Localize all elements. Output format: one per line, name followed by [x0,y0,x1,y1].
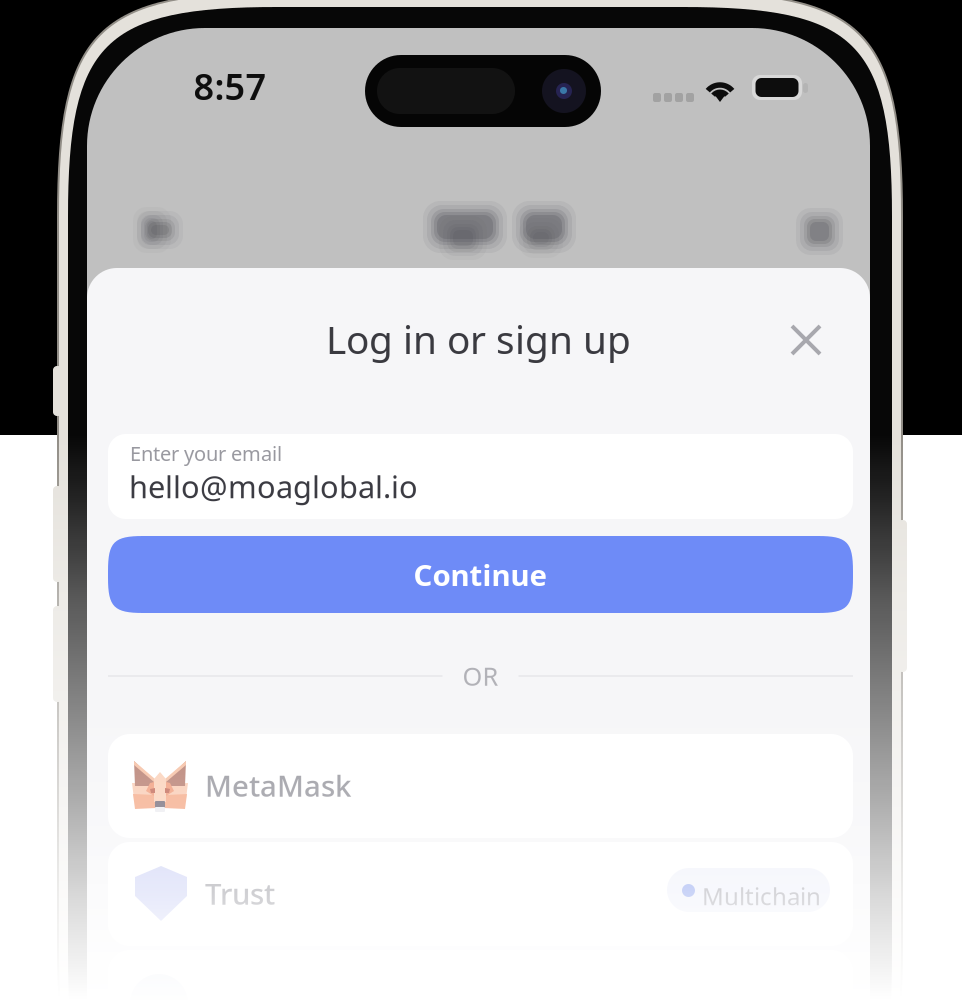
staticText: Trust [205,874,275,913]
staticText: Continue [413,555,547,594]
staticText: Enter your email [130,440,282,467]
staticText: hello@moaglobal.io [129,466,418,507]
button[interactable]: Close [777,311,835,369]
staticText: Log in or sign up [326,313,631,365]
button[interactable]: MetaMask [108,734,853,838]
staticText: OR [462,659,498,693]
staticText: MetaMask [205,766,351,805]
staticText: Multichain [702,880,821,912]
staticText: 8:57 [193,62,266,110]
button[interactable]: Continue [108,536,853,613]
button[interactable]: Trust [108,842,853,946]
